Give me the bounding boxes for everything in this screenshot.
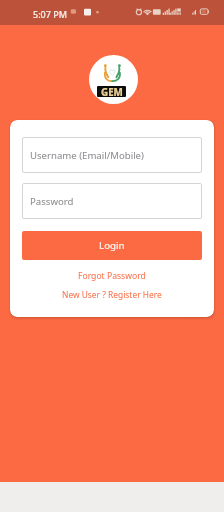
button[interactable]: Username (Email/Mobile) [22,137,202,173]
staticText: Username (Email/Mobile) [30,149,144,162]
staticText: Password [30,195,74,208]
button[interactable]: Login [22,231,202,260]
staticText: Forgot Password [78,270,146,282]
other: GEM logo [89,55,138,104]
staticText: Login [99,239,125,252]
button[interactable]: Password [22,183,202,219]
staticText: GEM [101,86,123,97]
button[interactable]: Forgot Password [10,265,214,280]
button[interactable]: New User ? Register Here [10,284,214,299]
staticText: 5:07 PM [33,8,67,20]
staticText: New User ? Register Here [62,289,162,300]
